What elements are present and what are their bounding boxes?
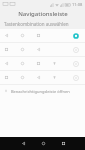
button[interactable]: Layout 1 xyxy=(0,29,85,42)
button[interactable]: Home xyxy=(33,137,53,150)
staticText: Benachrichtigungsleiste öffnen xyxy=(11,89,70,94)
staticText: 11:08 xyxy=(72,2,83,7)
button[interactable]: Layout 2 xyxy=(0,43,85,56)
button[interactable]: Back xyxy=(13,137,33,150)
button[interactable]: Layout 3 xyxy=(0,57,85,70)
staticText: Tastenkombination auswählen xyxy=(4,21,69,27)
staticText: Navigationsleiste xyxy=(18,10,68,18)
button[interactable]: Recents xyxy=(53,137,73,150)
button[interactable]: Layout 4 xyxy=(0,71,85,84)
